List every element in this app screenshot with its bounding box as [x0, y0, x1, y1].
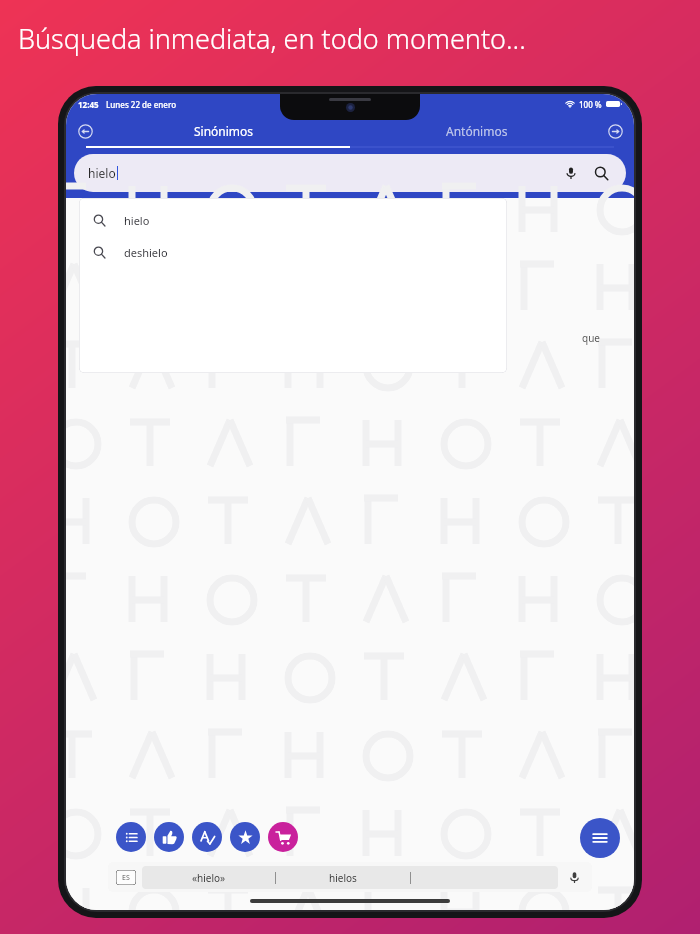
button[interactable]: deshielo — [79, 236, 507, 268]
staticText: 12:45 — [78, 99, 99, 110]
staticText: ES — [122, 873, 130, 883]
staticText: hielo — [124, 213, 150, 228]
button[interactable]: Spell check — [192, 822, 222, 852]
button[interactable]: Forward — [603, 119, 627, 143]
staticText: hielos — [329, 871, 357, 885]
staticText: Lunes 22 de enero — [106, 99, 177, 110]
button[interactable]: Favorites — [230, 822, 260, 852]
button[interactable]: Store — [268, 822, 298, 852]
staticText: Búsqueda inmediata, en todo momento... — [18, 20, 526, 57]
button[interactable]: Definitions — [116, 822, 146, 852]
staticText: 100 % — [579, 99, 602, 110]
staticText: deshielo — [124, 245, 168, 260]
button[interactable]: Search — [590, 162, 612, 184]
staticText: hielo — [88, 165, 116, 181]
button[interactable]: Antónimos — [350, 114, 603, 148]
button[interactable]: Voice input — [564, 867, 584, 887]
staticText: «hielo» — [192, 871, 226, 885]
button[interactable]: Like — [154, 822, 184, 852]
staticText: Antónimos — [446, 123, 508, 139]
button[interactable]: Back — [73, 119, 97, 143]
button[interactable]: hielo — [74, 154, 626, 192]
button[interactable]: hielos — [276, 866, 410, 889]
button[interactable]: Sinónimos — [97, 114, 350, 148]
button[interactable]: Menu — [580, 818, 620, 858]
button[interactable]: ES — [116, 870, 136, 885]
button[interactable]: «hielo» — [142, 866, 275, 889]
staticText: que — [582, 331, 600, 345]
button[interactable]: hielo — [79, 204, 507, 236]
button[interactable]: Voice search — [560, 162, 582, 184]
staticText: Sinónimos — [194, 123, 254, 139]
